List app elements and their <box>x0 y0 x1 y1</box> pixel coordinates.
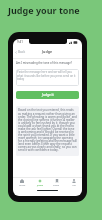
staticText: Paste the message here and we will tell … <box>17 70 78 80</box>
staticText: Home <box>19 184 26 187</box>
button[interactable]: Judge <box>31 178 48 188</box>
staticText: Saved <box>53 184 60 187</box>
staticText: Back <box>18 50 26 54</box>
button[interactable]: Judge it <box>16 91 79 99</box>
button[interactable]: Back <box>15 50 26 54</box>
button[interactable]: Paste the message here and we will tell … <box>17 70 78 86</box>
staticText: Judge your tone <box>8 4 80 16</box>
button[interactable]: Saved <box>48 178 65 188</box>
staticText: Am I misreading the tone of this message… <box>16 61 72 65</box>
staticText: 9:41 <box>17 40 23 44</box>
staticText: Judge <box>42 49 53 54</box>
button[interactable]: Home <box>13 178 31 188</box>
staticText: You <box>72 184 76 187</box>
staticText: Judge it <box>42 93 54 97</box>
staticText: Based on the text you entered, this read… <box>18 108 77 151</box>
staticText: Judge <box>37 184 43 187</box>
button[interactable]: You <box>65 178 82 188</box>
